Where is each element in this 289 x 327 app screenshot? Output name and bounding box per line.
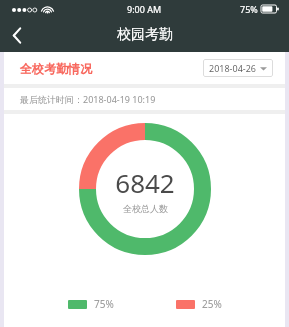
staticText: 全校考勤情况	[20, 61, 92, 76]
button[interactable]: 75%	[68, 297, 114, 311]
staticText: 6842	[115, 165, 175, 200]
button[interactable]: Back	[0, 18, 34, 52]
button[interactable]: 25%	[176, 297, 222, 311]
staticText: 75%	[94, 297, 114, 311]
staticText: 25%	[202, 297, 222, 311]
staticText: 2018-04-26	[209, 62, 256, 74]
staticText: 校园考勤	[117, 26, 173, 44]
staticText: 最后统计时间：2018-04-19 10:19	[20, 93, 156, 105]
staticText: 75%	[240, 3, 258, 15]
button[interactable]: 2018-04-26	[203, 59, 273, 77]
staticText: 全校总人数	[123, 203, 168, 214]
staticText: 9:00 AM	[127, 3, 162, 15]
